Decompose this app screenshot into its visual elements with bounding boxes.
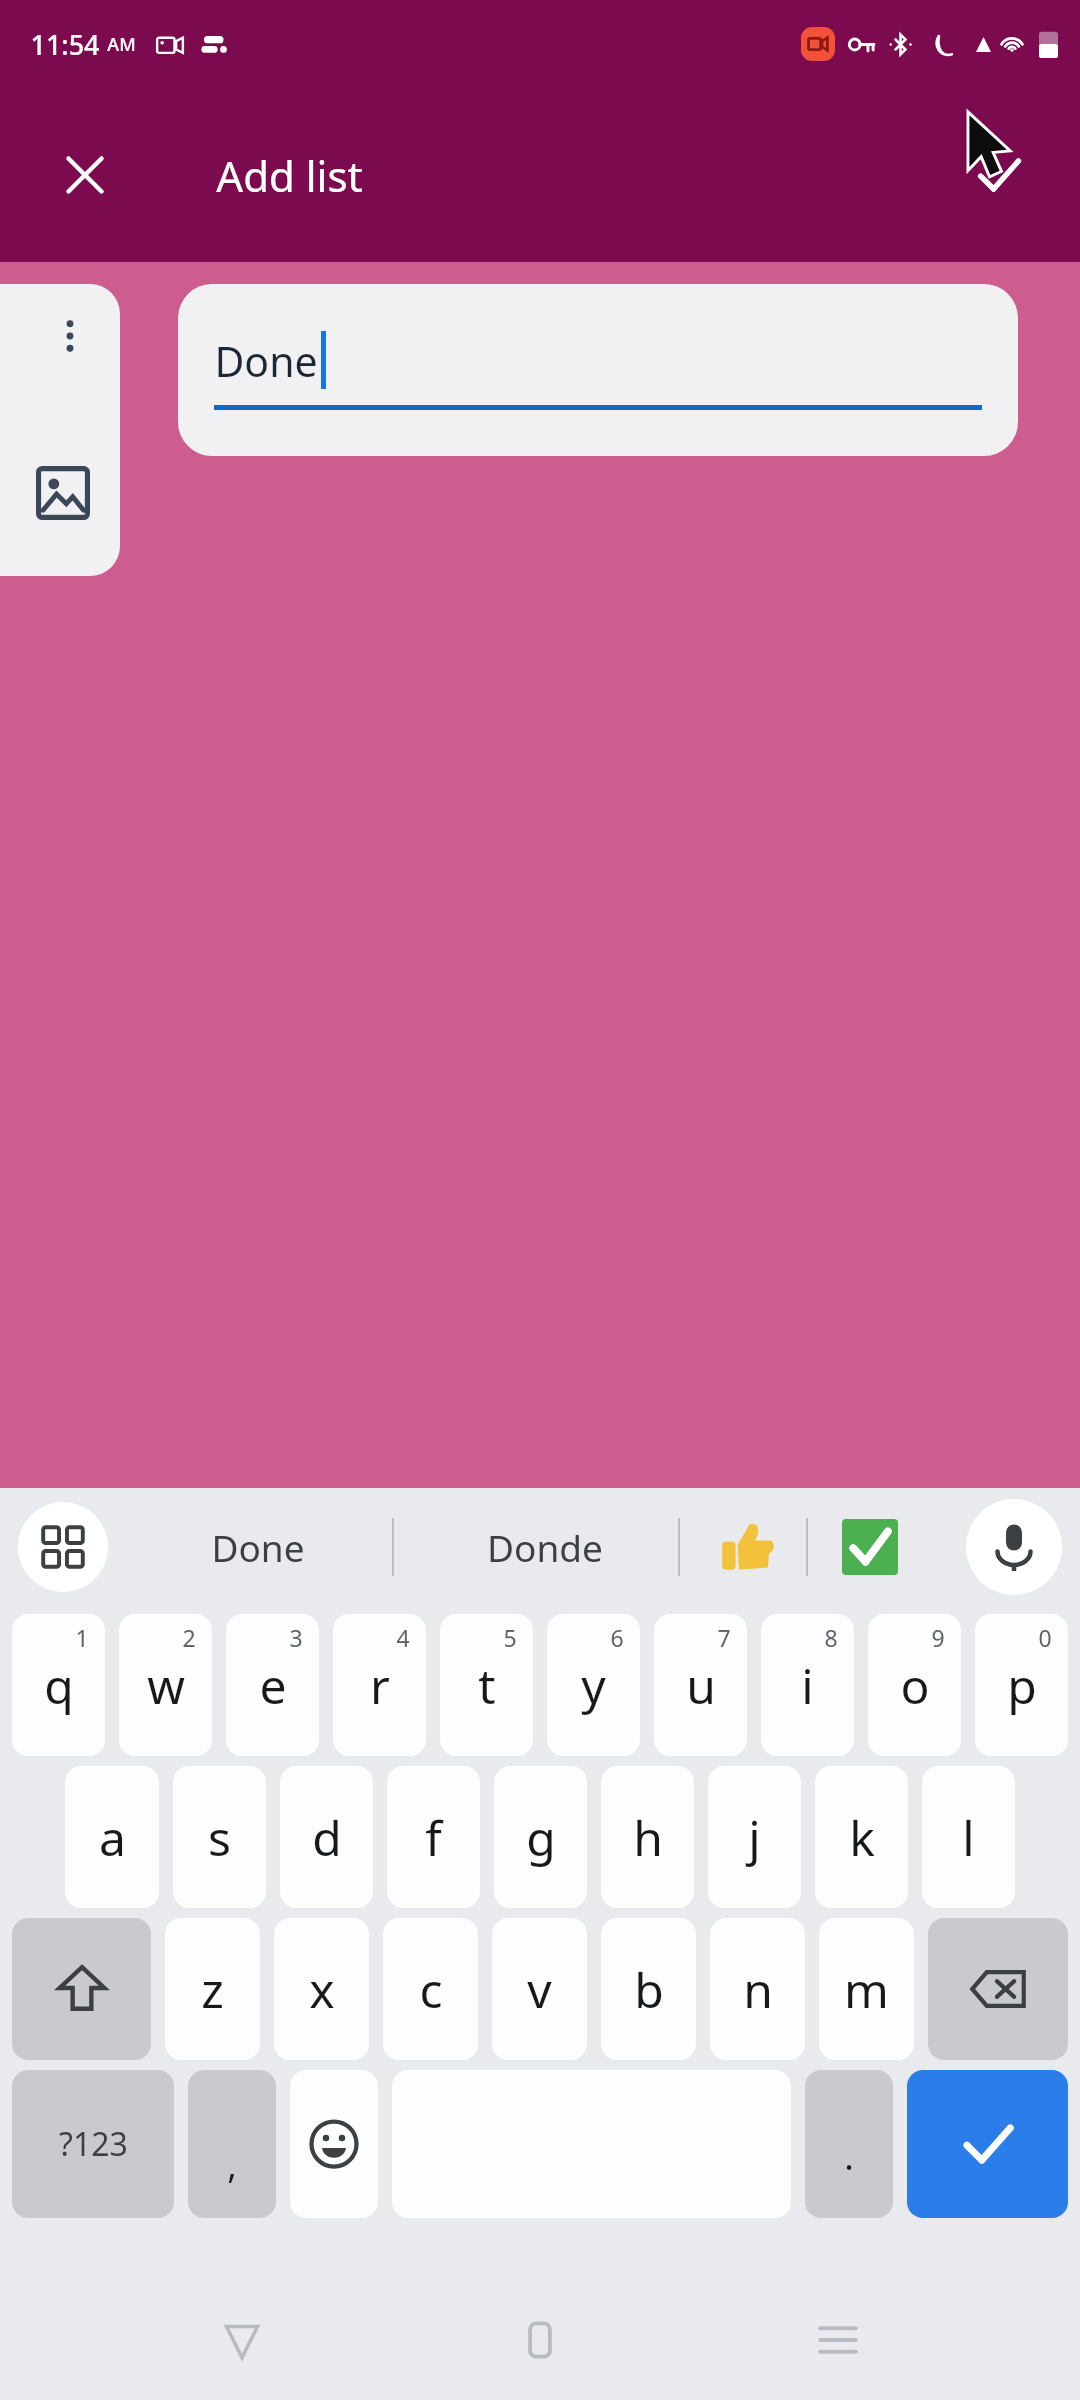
button[interactable]: i (761, 1614, 854, 1756)
button[interactable]: c (383, 1918, 478, 2060)
staticText: a (99, 1805, 126, 1870)
staticText: 4 (396, 1622, 410, 1653)
button[interactable]: n (710, 1918, 805, 2060)
button[interactable]: a (65, 1766, 159, 1908)
staticText: b (634, 1957, 664, 2022)
button[interactable]: d (280, 1766, 373, 1908)
button[interactable]: e (226, 1614, 319, 1756)
button[interactable]: g (494, 1766, 587, 1908)
button[interactable]: y (547, 1614, 640, 1756)
staticText: f (425, 1805, 442, 1870)
staticText: n (743, 1957, 773, 2022)
staticText: q (44, 1653, 74, 1718)
button[interactable]: t (440, 1614, 533, 1756)
staticText: k (849, 1805, 875, 1870)
button[interactable]: Close (32, 122, 138, 228)
button[interactable]: j (708, 1766, 801, 1908)
staticText: i (801, 1653, 814, 1718)
button[interactable]: Back (186, 2284, 298, 2396)
button[interactable]: o (868, 1614, 961, 1756)
button[interactable]: Add image (26, 456, 100, 530)
button[interactable] (696, 1495, 800, 1599)
button[interactable]: Voice input (966, 1499, 1062, 1595)
staticText: j (748, 1805, 761, 1870)
staticText: 8 (824, 1622, 838, 1653)
staticText: y (581, 1653, 606, 1718)
button[interactable]: Shift (12, 1918, 151, 2060)
staticText: u (686, 1653, 716, 1718)
button[interactable]: u (654, 1614, 747, 1756)
button[interactable]: Done (178, 284, 1018, 456)
staticText: , (227, 2140, 237, 2189)
staticText: d (312, 1805, 342, 1870)
staticText: w (147, 1653, 185, 1718)
staticText: s (208, 1805, 231, 1870)
button[interactable]: Recents (782, 2284, 894, 2396)
button[interactable]: w (119, 1614, 212, 1756)
button[interactable]: b (601, 1918, 696, 2060)
button[interactable]: f (387, 1766, 480, 1908)
button[interactable]: x (274, 1918, 369, 2060)
staticText: 9 (931, 1622, 945, 1653)
button[interactable]: q (12, 1614, 105, 1756)
button[interactable]: Donde (410, 1488, 680, 1606)
button[interactable] (818, 1495, 922, 1599)
staticText: c (419, 1957, 443, 2022)
staticText: 11:54 (30, 26, 100, 63)
button[interactable]: l (922, 1766, 1015, 1908)
button[interactable]: k (815, 1766, 908, 1908)
staticText: ?123 (59, 2122, 128, 2166)
button[interactable]: More options (34, 300, 106, 372)
staticText: Donde (487, 1522, 603, 1572)
staticText: Done (211, 1522, 305, 1572)
button[interactable]: Backspace (928, 1918, 1068, 2060)
staticText: t (478, 1653, 496, 1718)
button[interactable]: Keyboard options (18, 1502, 108, 1592)
staticText: 0 (1038, 1622, 1052, 1653)
button[interactable]: r (333, 1614, 426, 1756)
staticText: x (309, 1957, 335, 2022)
staticText: . (844, 2132, 854, 2181)
button[interactable]: Save list (946, 122, 1052, 228)
staticText: AM (107, 32, 136, 57)
button[interactable]: , (188, 2070, 276, 2218)
button[interactable]: Enter (907, 2070, 1068, 2218)
button[interactable]: s (173, 1766, 266, 1908)
button[interactable]: Home (484, 2284, 596, 2396)
staticText: r (370, 1653, 390, 1718)
staticText: 6 (610, 1622, 624, 1653)
staticText: 7 (717, 1622, 731, 1653)
staticText: Done (214, 333, 318, 389)
staticText: v (527, 1957, 552, 2022)
staticText: o (900, 1653, 930, 1718)
button[interactable]: v (492, 1918, 587, 2060)
button[interactable]: z (165, 1918, 260, 2060)
staticText: 5 (503, 1622, 517, 1653)
button[interactable]: ?123 (12, 2070, 174, 2218)
button[interactable]: Emoji (290, 2070, 378, 2218)
button[interactable]: Done (130, 1488, 386, 1606)
staticText: m (844, 1957, 889, 2022)
staticText: h (633, 1805, 663, 1870)
staticText: 1 (75, 1622, 89, 1653)
button[interactable]: . (805, 2070, 893, 2218)
staticText: 2 (182, 1622, 196, 1653)
staticText: 3 (289, 1622, 303, 1653)
staticText: p (1007, 1653, 1037, 1718)
staticText: l (962, 1805, 975, 1870)
staticText: e (259, 1653, 287, 1718)
button[interactable]: m (819, 1918, 914, 2060)
staticText: z (201, 1957, 224, 2022)
button[interactable]: h (601, 1766, 694, 1908)
button[interactable]: p (975, 1614, 1068, 1756)
staticText: g (526, 1805, 556, 1870)
staticText: Add list (216, 147, 363, 204)
